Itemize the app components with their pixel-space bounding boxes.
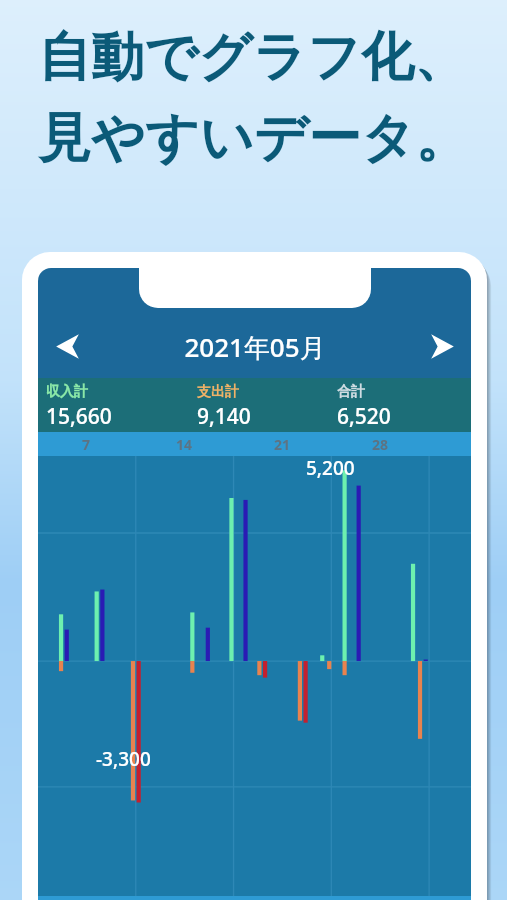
staticText: 7 [82, 435, 91, 454]
staticText: 支出計 [197, 383, 239, 401]
staticText: 見やすいデータ。 [38, 105, 469, 172]
staticText: -3,300 [96, 746, 151, 772]
staticText: 28 [372, 435, 389, 454]
button[interactable]: Previous month [38, 315, 96, 378]
button[interactable]: 収入計 [38, 378, 471, 432]
staticText: 21 [274, 435, 291, 454]
staticText: 9,140 [197, 402, 251, 431]
staticText: 収入計 [46, 383, 88, 401]
staticText: 6,520 [337, 402, 391, 431]
staticText: 合計 [337, 383, 365, 401]
staticText: 2021年05月 [184, 329, 326, 365]
staticText: 自動でグラフ化、 [38, 24, 467, 91]
staticText: 5,200 [306, 455, 355, 481]
staticText: 15,660 [46, 402, 112, 431]
button[interactable]: Next month [413, 315, 471, 378]
staticText: 14 [176, 435, 193, 454]
